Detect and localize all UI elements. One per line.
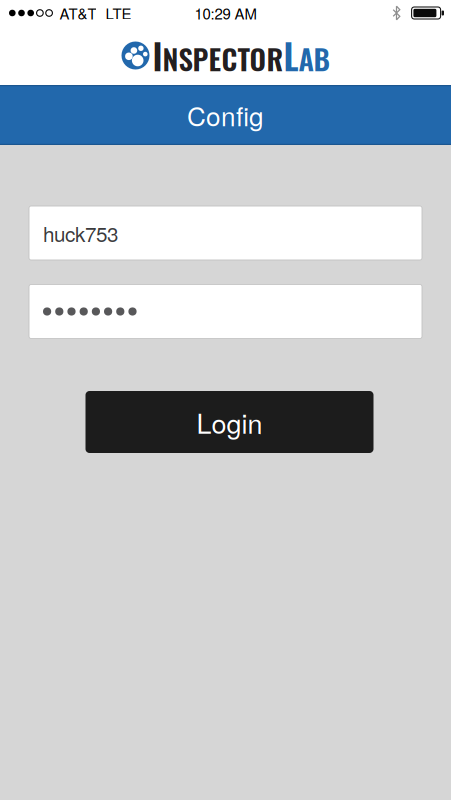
staticText: 10:29 AM [194,2,256,24]
staticText: INSPECTOR [152,30,283,81]
staticText: LAB [283,30,329,81]
staticText: LTE [105,2,131,24]
button[interactable]: huck753 [0,206,451,260]
staticText: AT&T [59,2,96,24]
staticText: huck753 [43,218,118,248]
button[interactable]: Login [85,391,373,453]
button[interactable]: Password [0,284,451,338]
staticText: Config [187,96,264,134]
staticText: Login [196,403,262,441]
